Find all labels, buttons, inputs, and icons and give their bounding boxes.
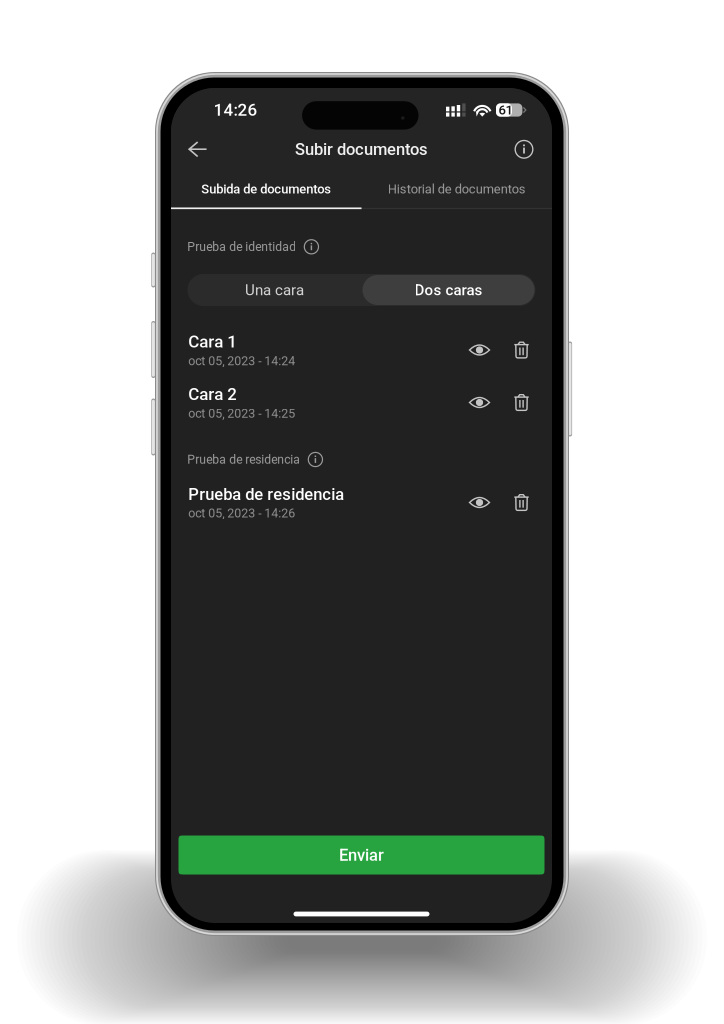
button[interactable]: Una cara [187,274,361,306]
staticText: oct 05, 2023 - 14:26 [188,506,295,520]
button[interactable]: Información: Prueba de identidad [300,236,322,258]
staticText: Enviar [339,845,384,865]
button[interactable]: Eliminar Prueba de residencia [501,485,541,519]
button[interactable]: Información [504,129,544,169]
staticText: Prueba de residencia [187,452,300,467]
staticText: Subir documentos [295,140,428,159]
staticText: Subida de documentos [201,181,331,197]
button[interactable]: Atrás [177,129,219,169]
button[interactable]: Enviar [178,835,544,874]
button[interactable]: Ver Cara 2 [459,385,499,419]
button[interactable]: Información: Prueba de residencia [304,448,326,470]
staticText: oct 05, 2023 - 14:25 [188,406,295,421]
staticText: Una cara [245,281,304,299]
button[interactable]: Subida de documentos [171,170,361,208]
staticText: Cara 1 [188,332,237,352]
staticText: Cara 2 [188,384,237,404]
staticText: 14:26 [213,100,257,120]
staticText: oct 05, 2023 - 14:24 [188,354,295,368]
button[interactable]: Historial de documentos [361,170,552,208]
button[interactable]: Ver Cara 1 [459,333,499,367]
staticText: Prueba de residencia [188,484,344,504]
button[interactable]: Dos caras [362,275,534,305]
button[interactable]: Ver Prueba de residencia [459,485,499,519]
button[interactable]: Eliminar Cara 1 [501,333,541,367]
staticText: Dos caras [414,281,482,299]
staticText: 61 [498,102,512,118]
button[interactable]: Eliminar Cara 2 [501,385,541,419]
staticText: Prueba de identidad [187,240,296,254]
staticText: Historial de documentos [388,181,526,197]
